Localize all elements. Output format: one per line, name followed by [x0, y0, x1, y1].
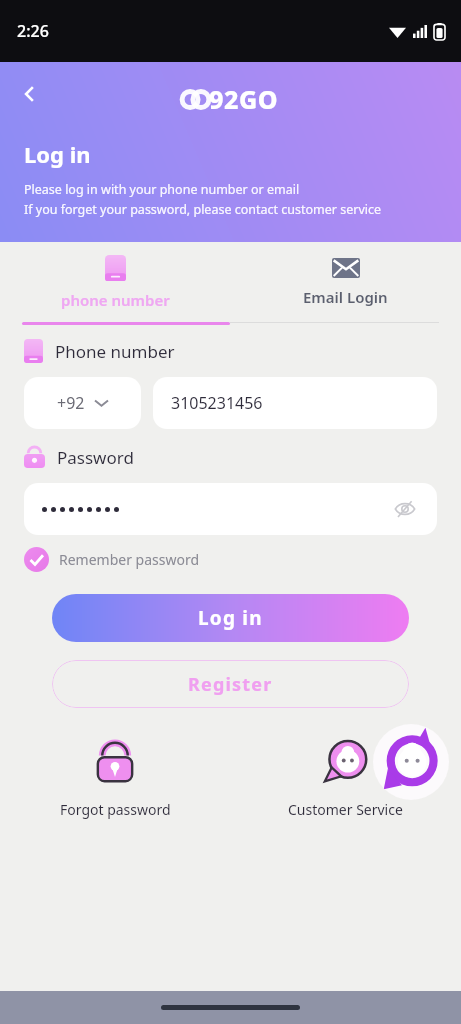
staticText: Please log in with your phone number or … [24, 181, 300, 198]
staticText: Email Login [303, 287, 388, 307]
button[interactable]: Register [52, 660, 409, 708]
staticText: Register [188, 672, 273, 697]
button[interactable]: Customer Service [230, 716, 461, 819]
staticText: 3105231456 [171, 392, 263, 414]
staticText: 92GO [209, 82, 279, 116]
button[interactable]: Forgot password [0, 716, 230, 819]
button[interactable]: phone number [0, 242, 230, 322]
staticText: If you forget your password, please cont… [24, 201, 382, 218]
staticText: Log in [198, 605, 263, 631]
staticText: Customer Service [288, 800, 403, 819]
button[interactable]: Customer Service chat [373, 724, 449, 800]
button[interactable]: 3105231456 [153, 377, 437, 429]
staticText: +92 [57, 392, 85, 414]
staticText: Forgot password [60, 800, 171, 819]
button[interactable]: Show password [24, 483, 437, 535]
button[interactable]: Back [8, 72, 52, 116]
staticText: Remember password [59, 550, 200, 569]
staticText: 2:26 [17, 20, 49, 42]
staticText: Log in [24, 139, 91, 169]
button[interactable]: Show password [391, 495, 419, 523]
button[interactable]: Email Login [230, 242, 461, 322]
button[interactable]: Log in [52, 594, 409, 642]
staticText: phone number [61, 290, 170, 310]
staticText: Password [57, 446, 134, 469]
button[interactable]: +92 [24, 377, 141, 429]
staticText: Phone number [55, 340, 175, 363]
button[interactable]: Remember password [24, 547, 437, 572]
